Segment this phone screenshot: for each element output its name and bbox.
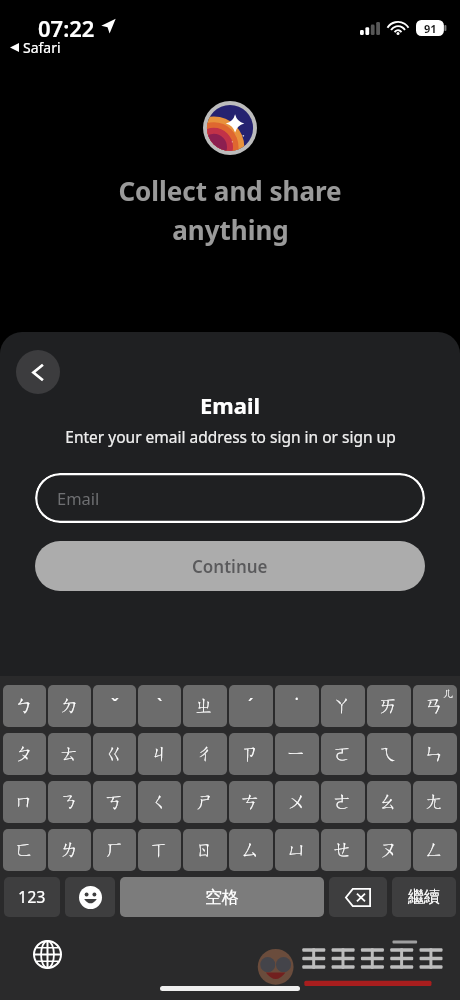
button[interactable]: ㄈ xyxy=(3,829,46,871)
staticText: ㄥ xyxy=(425,838,445,862)
button[interactable]: ˊ xyxy=(229,685,273,727)
button[interactable]: ㄠ xyxy=(367,781,411,823)
button[interactable]: ㄜ xyxy=(321,781,365,823)
staticText: ㄌ xyxy=(60,838,80,862)
button[interactable]: ㄞ xyxy=(367,685,411,727)
button[interactable]: ㄙ xyxy=(229,829,273,871)
staticText: ㄛ xyxy=(333,742,353,766)
button[interactable]: Back xyxy=(16,350,60,394)
staticText: ㄓ xyxy=(195,694,215,718)
staticText: ㄝ xyxy=(333,838,353,862)
button[interactable]: ㄢ xyxy=(413,685,457,727)
button[interactable]: ㄘ xyxy=(229,781,273,823)
staticText: ㄋ xyxy=(60,790,80,814)
button[interactable]: ㄊ xyxy=(48,733,91,775)
staticText: Email xyxy=(57,487,100,509)
button[interactable]: ㄎ xyxy=(93,781,136,823)
staticText: ㄨ xyxy=(287,790,307,814)
button[interactable]: Backspace xyxy=(329,877,387,917)
staticText: ㄔ xyxy=(195,742,215,766)
staticText: ㄇ xyxy=(15,790,35,814)
staticText: Safari xyxy=(23,38,61,57)
staticText: ㄚ xyxy=(333,694,353,718)
staticText: 繼續 xyxy=(408,887,440,907)
button[interactable]: ㄖ xyxy=(183,829,227,871)
staticText: anything xyxy=(172,212,289,247)
button[interactable]: ㄇ xyxy=(3,781,46,823)
button[interactable]: ㄧ xyxy=(275,733,319,775)
staticText: ㄉ xyxy=(60,694,80,718)
staticText: ㄢ xyxy=(425,694,445,718)
staticText: ㄖ xyxy=(195,838,215,862)
staticText: ㄊ xyxy=(60,742,80,766)
staticText: ㄧ xyxy=(287,742,307,766)
button[interactable]: Emoji xyxy=(65,877,115,917)
button[interactable]: ㄔ xyxy=(183,733,227,775)
staticText: ㄩ xyxy=(287,838,307,862)
button[interactable]: ㄤ xyxy=(413,781,457,823)
button[interactable]: ㄉ xyxy=(48,685,91,727)
staticText: ㄞ xyxy=(379,694,399,718)
staticText: 91 xyxy=(424,21,437,36)
staticText: ㄍ xyxy=(105,742,125,766)
button[interactable]: ㄥ xyxy=(413,829,457,871)
button[interactable]: ㄆ xyxy=(3,733,46,775)
button[interactable]: ㄣ xyxy=(413,733,457,775)
staticText: ㄑ xyxy=(150,790,170,814)
button[interactable]: ㄐ xyxy=(138,733,181,775)
button[interactable]: Change keyboard xyxy=(28,935,66,973)
button[interactable]: ㄓ xyxy=(183,685,227,727)
staticText: Email xyxy=(200,390,261,420)
staticText: ㄘ xyxy=(241,790,261,814)
button[interactable]: ㄅ xyxy=(3,685,46,727)
staticText: ˋ xyxy=(157,693,163,719)
staticText: ㄒ xyxy=(150,838,170,862)
staticText: ㄡ xyxy=(379,838,399,862)
staticText: 07:22 xyxy=(38,13,95,43)
staticText: Continue xyxy=(192,555,268,578)
staticText: ㄤ xyxy=(425,790,445,814)
staticText: ㄠ xyxy=(379,790,399,814)
button[interactable]: 繼續 xyxy=(392,877,456,917)
staticText: ㄈ xyxy=(15,838,35,862)
button[interactable]: 123 xyxy=(4,877,60,917)
staticText: 空格 xyxy=(205,887,239,908)
button[interactable]: ㄟ xyxy=(367,733,411,775)
button[interactable]: ㄛ xyxy=(321,733,365,775)
button[interactable]: ㄏ xyxy=(93,829,136,871)
staticText: ㄙ xyxy=(241,838,261,862)
button[interactable]: ㄨ xyxy=(275,781,319,823)
button[interactable]: ˋ xyxy=(138,685,181,727)
button[interactable]: ㄕ xyxy=(183,781,227,823)
staticText: 123 xyxy=(18,886,46,908)
staticText: ㄣ xyxy=(425,742,445,766)
staticText: ㄅ xyxy=(15,694,35,718)
button[interactable]: ㄗ xyxy=(229,733,273,775)
staticText: Enter your email address to sign in or s… xyxy=(65,426,396,447)
staticText: ㄦ xyxy=(443,686,455,700)
button[interactable]: ㄩ xyxy=(275,829,319,871)
button[interactable]: ㄚ xyxy=(321,685,365,727)
button[interactable]: ㄒ xyxy=(138,829,181,871)
staticText: ㄟ xyxy=(379,742,399,766)
button[interactable]: ㄡ xyxy=(367,829,411,871)
button[interactable]: ㄍ xyxy=(93,733,136,775)
button[interactable]: ˇ xyxy=(93,685,136,727)
button[interactable]: ˙ xyxy=(275,685,319,727)
button[interactable]: ㄑ xyxy=(138,781,181,823)
button[interactable]: 空格 xyxy=(120,877,324,917)
button[interactable]: Continue xyxy=(35,541,425,591)
staticText: ˙ xyxy=(295,693,299,719)
button[interactable]: ㄋ xyxy=(48,781,91,823)
staticText: ㄕ xyxy=(195,790,215,814)
staticText: ㄗ xyxy=(241,742,261,766)
staticText: ˊ xyxy=(248,693,254,719)
staticText: ˇ xyxy=(111,693,119,719)
staticText: ㄜ xyxy=(333,790,353,814)
staticText: Collect and share xyxy=(118,173,342,208)
button[interactable]: ㄝ xyxy=(321,829,365,871)
staticText: ㄎ xyxy=(105,790,125,814)
button[interactable]: ㄌ xyxy=(48,829,91,871)
staticText: ㄏ xyxy=(105,838,125,862)
button[interactable]: Email xyxy=(35,473,425,523)
